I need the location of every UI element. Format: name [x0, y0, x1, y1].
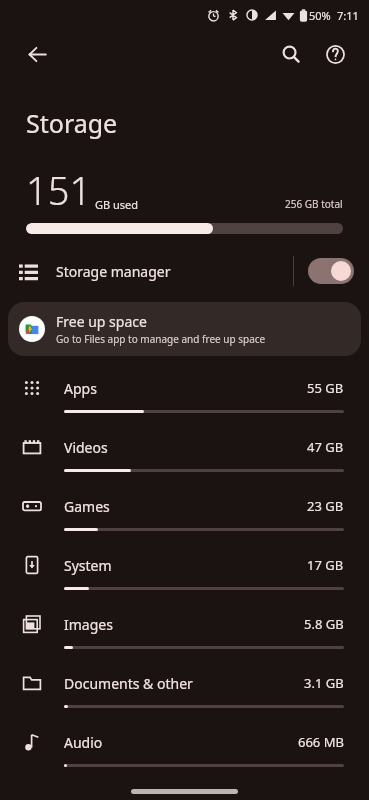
button[interactable]: Back: [18, 35, 56, 73]
staticText: Go to Files app to manage and free up sp…: [56, 332, 266, 346]
staticText: Videos: [64, 438, 108, 457]
staticText: Free up space: [56, 312, 147, 331]
staticText: 7:11: [337, 8, 359, 23]
staticText: 256 GB total: [285, 197, 343, 211]
button[interactable]: Documents & other: [0, 659, 369, 718]
staticText: System: [64, 556, 112, 575]
staticText: 3.1 GB: [304, 674, 344, 692]
button[interactable]: Search: [271, 34, 311, 74]
button[interactable]: Storage manager toggle: [308, 258, 354, 284]
staticText: Images: [64, 615, 113, 634]
button[interactable]: Audio: [0, 718, 369, 777]
staticText: 151: [26, 164, 92, 216]
staticText: 666 MB: [298, 733, 344, 751]
staticText: 55 GB: [307, 379, 344, 397]
staticText: Apps: [64, 379, 97, 398]
button[interactable]: Storage manager: [0, 246, 369, 296]
staticText: Documents & other: [64, 674, 193, 693]
staticText: 23 GB: [307, 497, 344, 515]
staticText: Games: [64, 497, 110, 516]
button[interactable]: Apps: [0, 364, 369, 423]
button[interactable]: Images: [0, 600, 369, 659]
staticText: Storage: [26, 106, 118, 140]
staticText: Audio: [64, 733, 103, 752]
button[interactable]: Games: [0, 482, 369, 541]
staticText: 47 GB: [307, 438, 344, 456]
button[interactable]: System: [0, 541, 369, 600]
staticText: Storage manager: [56, 262, 171, 281]
staticText: 50%: [309, 8, 331, 23]
button[interactable]: Videos: [0, 423, 369, 482]
staticText: 5.8 GB: [304, 615, 344, 633]
button[interactable]: Free up space: [8, 302, 361, 356]
button[interactable]: Help: [315, 34, 355, 74]
staticText: GB used: [95, 197, 139, 212]
staticText: 17 GB: [307, 556, 344, 574]
